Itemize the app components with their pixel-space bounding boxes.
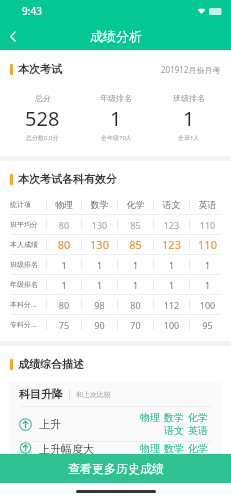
staticText: 物理 <box>140 442 160 454</box>
staticText: 123 <box>154 219 189 231</box>
staticText: 528 <box>25 105 60 132</box>
staticText: 75 <box>47 319 81 331</box>
staticText: 1 <box>47 279 81 291</box>
staticText: 本次考试 <box>18 62 62 76</box>
staticText: 110 <box>190 237 225 252</box>
staticText: 化学 <box>188 411 208 424</box>
staticText: 110 <box>190 219 225 231</box>
staticText: 80 <box>47 299 81 311</box>
staticText: 112 <box>154 299 189 311</box>
staticText: 9:43 <box>22 4 42 18</box>
staticText: 1 <box>82 259 117 271</box>
button[interactable]: 总分 <box>9 88 76 147</box>
button[interactable]: 年级排名 <box>83 88 149 147</box>
staticText: 物理 <box>47 199 81 210</box>
staticText: 统计项 <box>10 200 46 209</box>
staticText: 85 <box>118 237 153 252</box>
staticText: 1 <box>183 105 195 132</box>
staticText: 1 <box>154 259 189 271</box>
staticText: 1 <box>47 259 81 271</box>
staticText: 201912月份月考 <box>161 64 221 75</box>
staticText: 80 <box>118 299 153 311</box>
button[interactable]: 查看更多历史成绩 <box>0 454 231 483</box>
staticText: 上升 <box>39 417 61 431</box>
staticText: 语文 <box>154 199 189 210</box>
staticText: 化学 <box>118 199 153 210</box>
staticText: 本人成绩 <box>10 240 46 249</box>
staticText: 查看更多历史成绩 <box>68 461 164 476</box>
staticText: 英语 <box>190 199 225 210</box>
staticText: 和上次比较 <box>76 390 111 399</box>
staticText: 上升幅度大 <box>39 442 94 454</box>
button[interactable]: 班级排名 <box>156 88 222 147</box>
staticText: 85 <box>118 219 153 231</box>
staticText: 成绩综合描述 <box>18 357 84 371</box>
staticText: 物理 <box>140 411 160 424</box>
staticText: 1 <box>190 279 225 291</box>
button[interactable]: Back <box>0 23 26 49</box>
staticText: 年级排名 <box>100 93 132 103</box>
staticText: 全年级70人 <box>101 134 132 142</box>
staticText: 123 <box>154 237 189 252</box>
staticText: 本次考试各科有效分 <box>18 172 117 186</box>
button[interactable]: 上升幅度大 <box>19 442 212 454</box>
staticText: 总分 <box>35 93 51 103</box>
staticText: 1 <box>154 279 189 291</box>
staticText: 班级排名 <box>173 93 205 103</box>
staticText: 90 <box>82 319 117 331</box>
staticText: 1 <box>118 279 153 291</box>
staticText: 本科分... <box>10 300 46 310</box>
staticText: 98 <box>82 299 117 311</box>
staticText: 1 <box>82 279 117 291</box>
staticText: 科目升降 <box>19 387 63 401</box>
staticText: 130 <box>82 237 117 252</box>
staticText: 1 <box>190 259 225 271</box>
staticText: 数学 <box>82 199 117 210</box>
staticText: 班平均分 <box>10 220 46 229</box>
staticText: 80 <box>47 219 81 231</box>
staticText: 专科分... <box>10 320 46 330</box>
button[interactable]: 上升 <box>19 407 212 441</box>
staticText: 130 <box>82 219 117 231</box>
staticText: 100 <box>190 299 225 311</box>
staticText: 数学 <box>164 411 184 424</box>
staticText: 100 <box>154 319 189 331</box>
staticText: 1 <box>118 259 153 271</box>
staticText: 成绩分析 <box>90 28 142 44</box>
staticText: 1 <box>110 105 122 132</box>
staticText: 化学 <box>188 442 208 454</box>
staticText: 95 <box>190 319 225 331</box>
staticText: 语文 <box>164 424 184 437</box>
staticText: 班级排名 <box>10 260 46 269</box>
staticText: 70 <box>118 319 153 331</box>
staticText: 年级排名 <box>10 280 46 289</box>
staticText: 全班1人 <box>178 134 200 142</box>
staticText: 数学 <box>164 442 184 454</box>
staticText: 总分数0.0分 <box>26 134 59 142</box>
staticText: 80 <box>47 237 81 252</box>
staticText: 英语 <box>188 424 208 437</box>
